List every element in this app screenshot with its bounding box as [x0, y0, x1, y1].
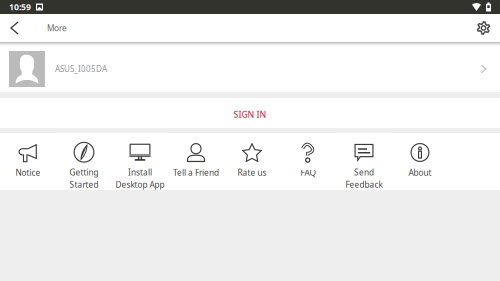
staticText: Feedback — [345, 179, 382, 190]
staticText: Rate us — [237, 167, 266, 178]
staticText: 10:59 — [9, 1, 31, 13]
staticText: Started — [69, 179, 98, 190]
staticText: Notice — [15, 167, 40, 178]
staticText: More — [47, 22, 67, 34]
staticText: Install — [128, 167, 152, 178]
button[interactable]: Notice — [0, 133, 56, 190]
button[interactable]: Tell a Friend — [168, 133, 224, 190]
button[interactable]: Install Desktop App — [112, 133, 168, 190]
staticText: About — [408, 167, 431, 178]
staticText: FAQ — [300, 167, 315, 178]
button[interactable]: ASUS_I005DA — [0, 46, 500, 92]
staticText: SIGN IN — [233, 109, 266, 120]
button[interactable]: About — [392, 133, 448, 190]
button[interactable]: Back — [0, 14, 29, 42]
staticText: Tell a Friend — [173, 167, 219, 178]
button[interactable]: Send Feedback — [336, 133, 392, 190]
staticText: Send — [354, 167, 374, 178]
button[interactable]: SIGN IN — [0, 98, 500, 128]
button[interactable]: FAQ — [280, 133, 336, 190]
staticText: Getting — [69, 167, 98, 178]
button[interactable]: Getting Started — [56, 133, 112, 190]
staticText: Desktop App — [115, 179, 164, 190]
staticText: ASUS_I005DA — [55, 64, 107, 74]
button[interactable]: Rate us — [224, 133, 280, 190]
button[interactable]: Settings — [467, 14, 500, 42]
